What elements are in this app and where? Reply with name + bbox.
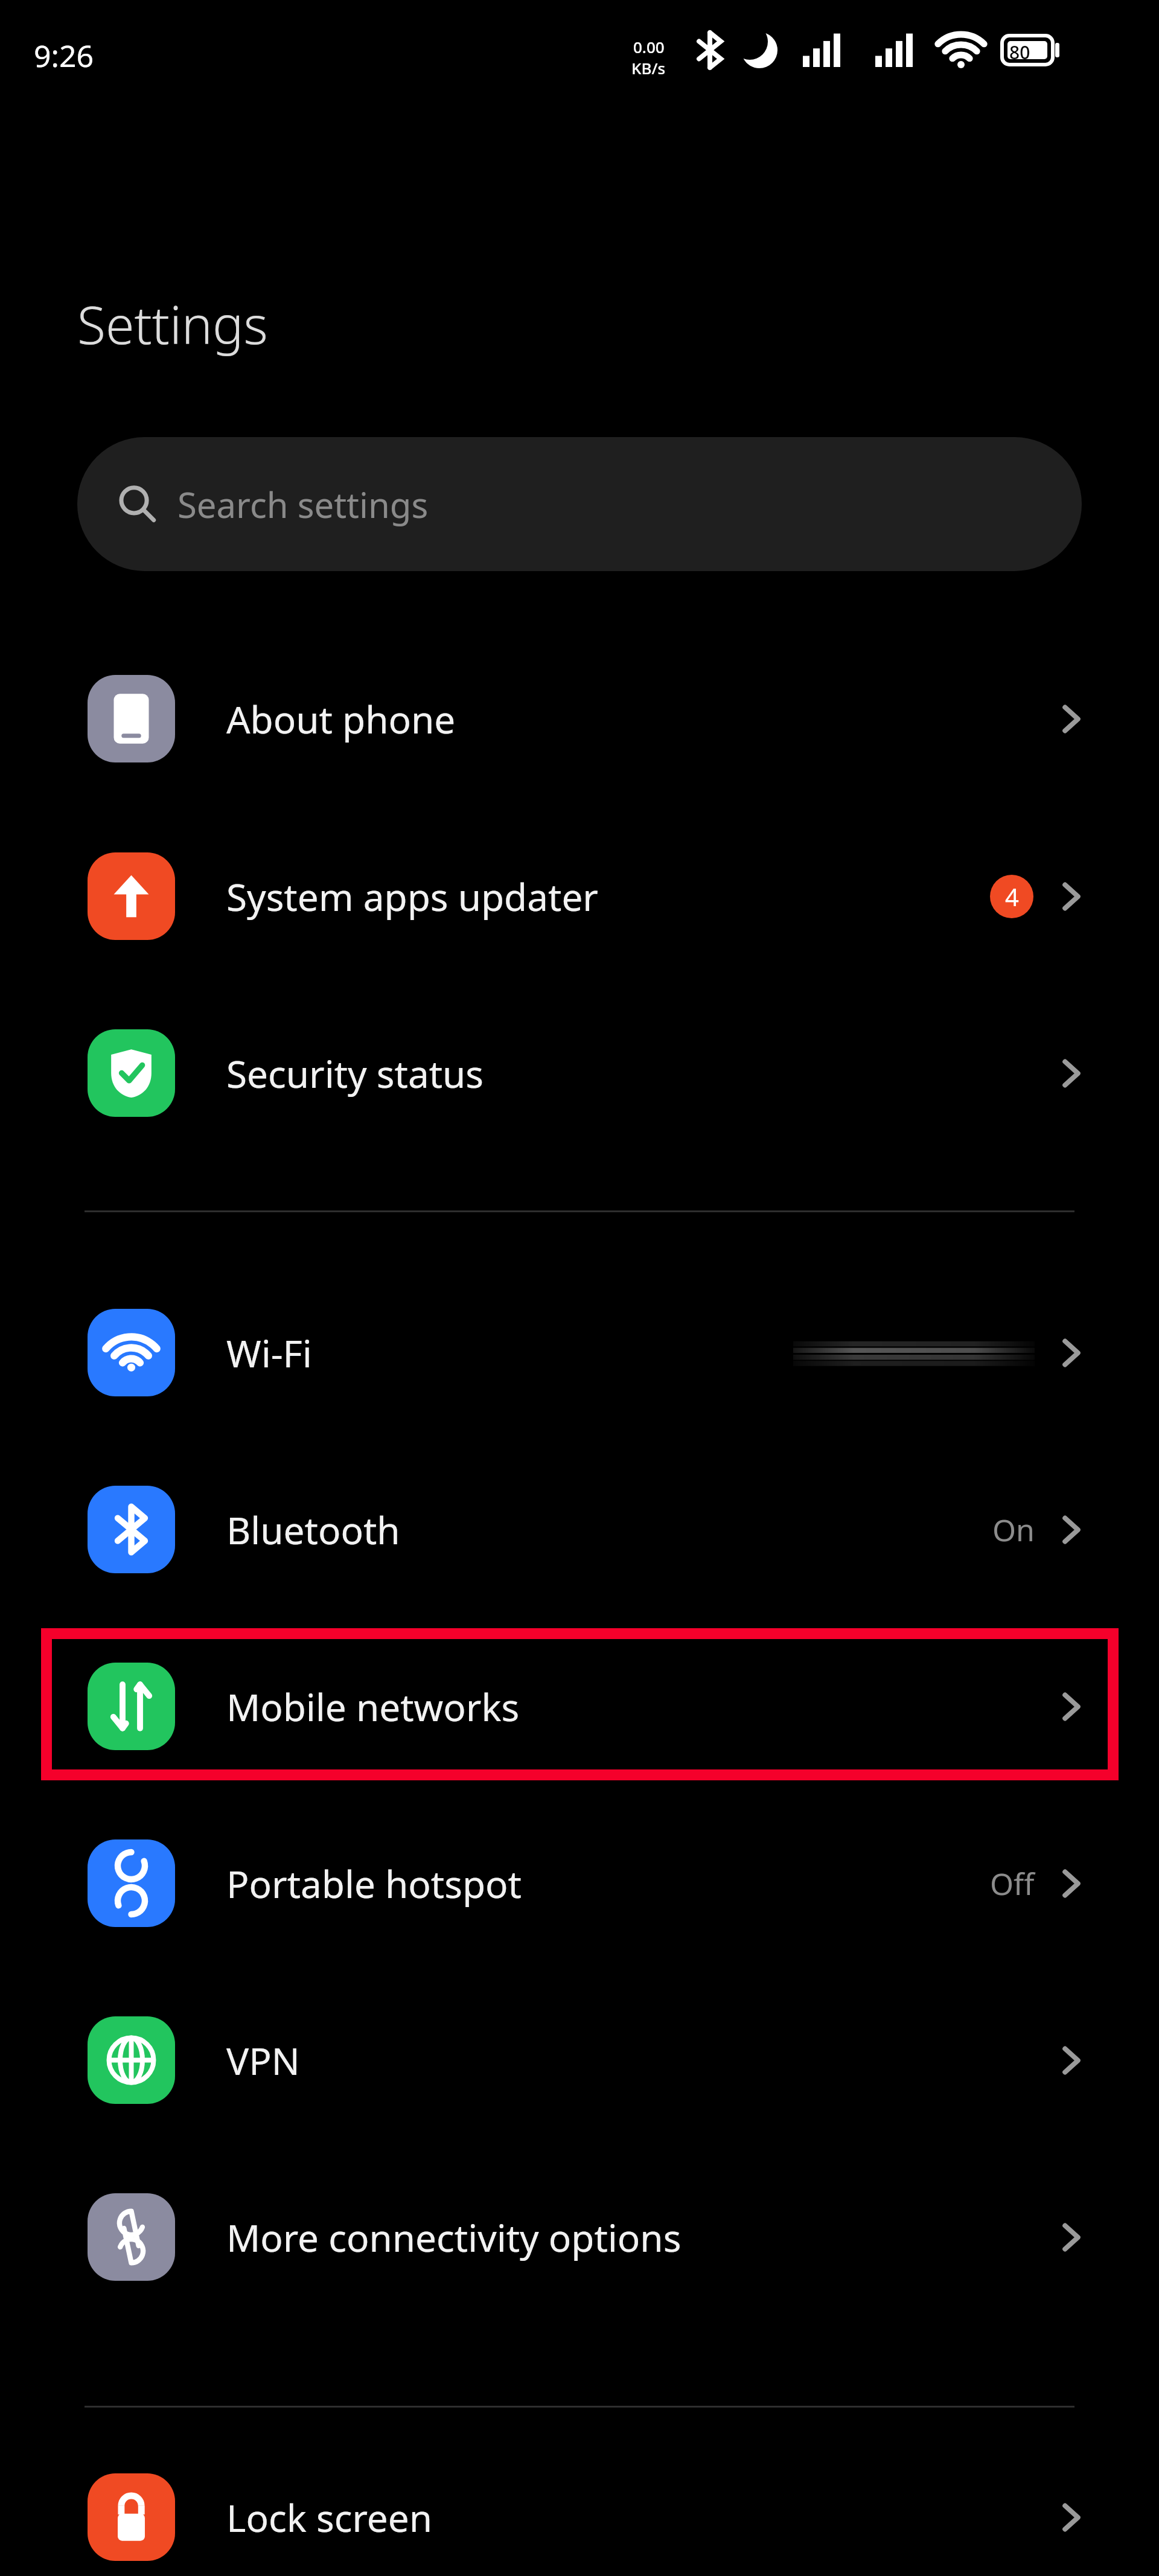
button[interactable]: About phone [0,630,1159,807]
button[interactable]: Search settings [77,437,1082,571]
button[interactable]: More connectivity options [0,2149,1159,2325]
staticText: Bluetooth [226,1504,400,1555]
button[interactable]: VPN [0,1972,1159,2149]
staticText: 0.00 [633,36,665,57]
staticText: More connectivity options [226,2212,682,2263]
button[interactable]: Wi-Fi [0,1264,1159,1441]
staticText: VPN [226,2035,300,2086]
staticText: Lock screen [226,2492,433,2543]
button[interactable]: System apps updater [0,808,1159,985]
button[interactable]: Portable hotspot [0,1795,1159,1972]
staticText: 80 [1009,40,1030,65]
staticText: KB/s [631,57,666,78]
staticText: System apps updater [226,871,598,922]
staticText: Settings [77,289,268,359]
staticText: Security status [226,1048,484,1099]
button[interactable]: Lock screen [0,2429,1159,2576]
staticText: Off [990,1863,1035,1904]
staticText: Search settings [177,481,429,528]
staticText: Mobile networks [226,1681,520,1732]
staticText: 9:26 [34,35,94,76]
button[interactable]: Bluetooth [0,1441,1159,1618]
button[interactable]: Mobile networks [0,1618,1159,1795]
staticText: About phone [226,694,456,744]
button[interactable]: Security status [0,985,1159,1162]
staticText: 4 [1005,880,1019,913]
staticText: Wi-Fi [226,1328,312,1378]
staticText: Portable hotspot [226,1858,522,1909]
staticText: On [992,1509,1035,1550]
